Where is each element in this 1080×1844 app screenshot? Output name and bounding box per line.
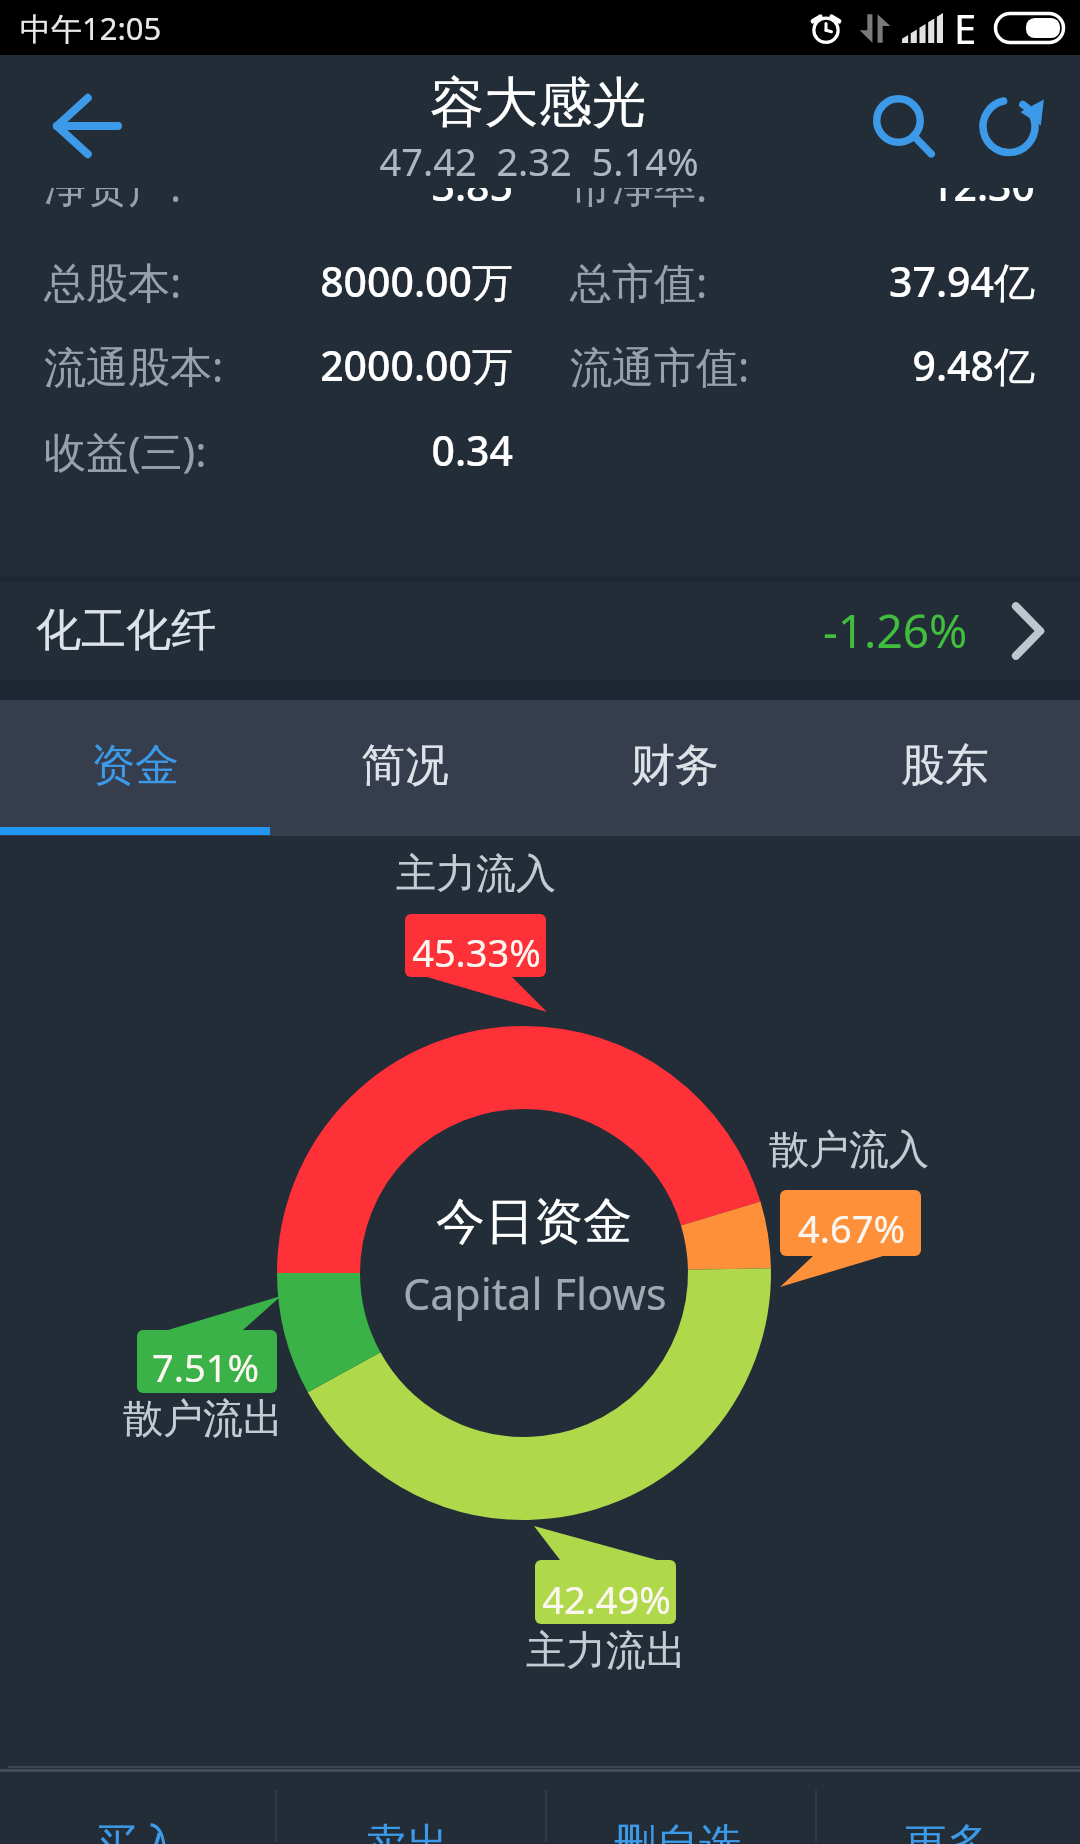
staticText: 流通市值: bbox=[570, 337, 750, 394]
staticText: E bbox=[954, 1, 977, 55]
staticText: Capital Flows bbox=[403, 1264, 667, 1323]
staticText: 市净率: bbox=[570, 188, 708, 214]
staticText: 流通股本: bbox=[44, 337, 224, 394]
staticText: 卖出 bbox=[364, 1818, 450, 1844]
button[interactable]: 买入 bbox=[0, 1766, 270, 1844]
staticText: 7.51% bbox=[152, 1341, 259, 1393]
button[interactable]: Back bbox=[21, 59, 151, 192]
button[interactable]: 化工化纤 bbox=[0, 582, 1080, 680]
button[interactable]: Search bbox=[848, 60, 958, 193]
staticText: 财务 bbox=[631, 738, 719, 793]
staticText: 中午12:05 bbox=[20, 7, 162, 49]
staticText: 简况 bbox=[361, 738, 449, 793]
staticText: 买入 bbox=[94, 1818, 180, 1844]
staticText: 主力流出 bbox=[526, 1625, 686, 1675]
staticText: 总市值: bbox=[570, 253, 708, 310]
button[interactable]: 财务 bbox=[540, 700, 810, 836]
staticText: 37.94亿 bbox=[735, 253, 1035, 309]
button[interactable]: 资金 bbox=[0, 700, 270, 836]
staticText: 3.85 bbox=[213, 188, 513, 213]
staticText: 股东 bbox=[901, 738, 989, 793]
staticText: 删自选 bbox=[613, 1818, 742, 1844]
staticText: 资金 bbox=[91, 738, 179, 793]
staticText: 散户流出 bbox=[123, 1393, 283, 1443]
button[interactable]: 删自选 bbox=[540, 1766, 810, 1844]
staticText: 净资产: bbox=[44, 188, 182, 214]
button[interactable]: 股东 bbox=[810, 700, 1080, 836]
staticText: 9.48亿 bbox=[735, 337, 1035, 393]
button[interactable]: 简况 bbox=[270, 700, 540, 836]
staticText: 45.33% bbox=[412, 926, 541, 978]
staticText: 今日资金 bbox=[436, 1191, 632, 1253]
button[interactable]: Refresh bbox=[954, 60, 1064, 193]
staticText: 12.30 bbox=[735, 188, 1035, 213]
staticText: 47.42 2.32 5.14% bbox=[379, 135, 699, 185]
button[interactable]: 更多 bbox=[810, 1766, 1080, 1844]
staticText: 更多 bbox=[904, 1818, 990, 1844]
staticText: -1.26% bbox=[823, 599, 968, 662]
staticText: 总股本: bbox=[44, 253, 182, 310]
staticText: 8000.00万 bbox=[213, 253, 513, 309]
staticText: 4.67% bbox=[798, 1202, 905, 1254]
button[interactable]: 卖出 bbox=[270, 1766, 540, 1844]
staticText: 散户流入 bbox=[769, 1124, 929, 1174]
staticText: 0.34 bbox=[213, 422, 513, 478]
staticText: 主力流入 bbox=[396, 848, 556, 898]
staticText: 42.49% bbox=[542, 1573, 671, 1625]
staticText: 2000.00万 bbox=[213, 337, 513, 393]
staticText: 容大感光 bbox=[430, 69, 646, 129]
staticText: 化工化纤 bbox=[36, 602, 216, 659]
staticText: 收益(三): bbox=[44, 422, 207, 479]
